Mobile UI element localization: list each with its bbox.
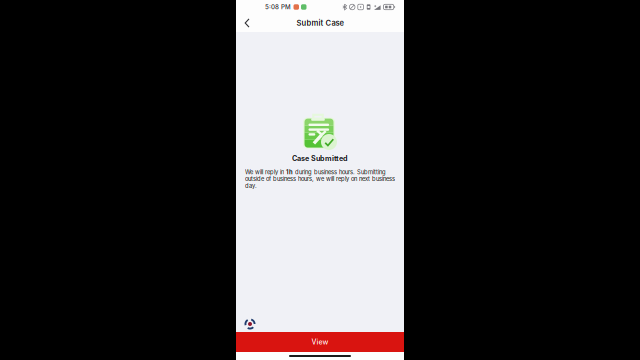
button[interactable]: Back [240, 14, 254, 32]
staticText: Case Submitted [292, 154, 348, 163]
button[interactable]: View [236, 332, 404, 352]
staticText: We will reply in 1h during business hour… [245, 169, 395, 189]
staticText: 5:08 PM [265, 3, 291, 11]
staticText: View [311, 338, 328, 346]
staticText: Submit Case [296, 18, 343, 28]
